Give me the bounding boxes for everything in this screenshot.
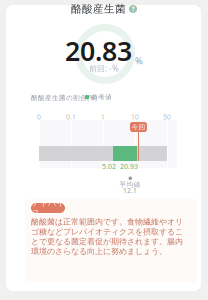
- staticText: 10: [131, 112, 139, 121]
- staticText: 1: [101, 112, 105, 121]
- staticText: 今回: [131, 123, 145, 131]
- staticText: %: [135, 54, 143, 67]
- staticText: ?: [131, 5, 134, 13]
- staticText: 酪酸菌は正常範囲内です。食物繊維やオリゴ糖などプレバイオティクスを摂取することで…: [31, 217, 183, 256]
- staticText: 12.1: [123, 186, 137, 195]
- staticText: 20.83: [65, 33, 132, 68]
- staticText: 平均値: [119, 180, 140, 189]
- staticText: 0: [37, 112, 41, 121]
- staticText: 0.1: [66, 112, 76, 121]
- staticText: 5.02: [102, 162, 116, 171]
- staticText: 20.93: [120, 162, 138, 171]
- staticText: アドバイス: [32, 198, 64, 218]
- staticText: 前回: -%: [89, 63, 119, 74]
- staticText: 参考値: [91, 93, 112, 101]
- staticText: 酪酸産生菌: [71, 2, 126, 15]
- staticText: 酪酸産生菌の割合(%): [31, 93, 97, 102]
- staticText: 50: [163, 112, 171, 121]
- button[interactable]: 酪酸産生菌: [0, 3, 208, 15]
